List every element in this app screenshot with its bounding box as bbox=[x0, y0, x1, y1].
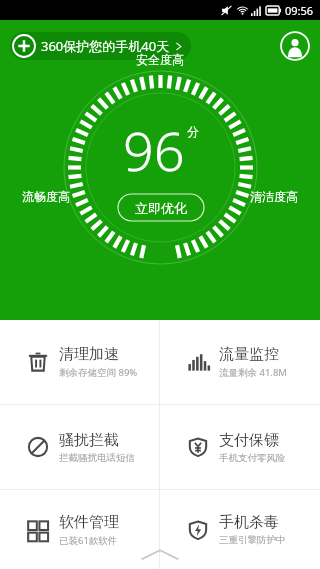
staticText: 骚扰拦截 bbox=[59, 431, 119, 450]
staticText: 已装61款软件 bbox=[59, 534, 118, 547]
staticText: 安全度高 bbox=[136, 52, 184, 67]
staticText: 拦截骚扰电话短信 bbox=[59, 452, 135, 464]
staticText: 清理加速 bbox=[59, 345, 119, 364]
staticText: 360保护您的手机40天 bbox=[41, 37, 170, 55]
staticText: 流量剩余 41.8M bbox=[219, 366, 287, 379]
staticText: 清洁度高 bbox=[250, 189, 298, 204]
staticText: 剩余存储空间 89% bbox=[59, 366, 138, 379]
staticText: 手机杀毒 bbox=[219, 513, 279, 532]
button[interactable]: 软件管理 bbox=[0, 490, 159, 569]
staticText: 手机支付零风险 bbox=[219, 452, 286, 464]
button[interactable]: 骚扰拦截 bbox=[0, 405, 159, 489]
button[interactable]: 支付保镖 bbox=[160, 405, 320, 489]
staticText: 软件管理 bbox=[59, 513, 119, 532]
staticText: 立即优化 bbox=[135, 200, 187, 216]
button[interactable]: 立即优化 bbox=[117, 193, 205, 222]
button[interactable]: 流量监控 bbox=[160, 320, 320, 404]
staticText: 三重引擎防护中 bbox=[219, 534, 286, 546]
button[interactable]: 手机杀毒 bbox=[160, 490, 320, 569]
staticText: 支付保镖 bbox=[219, 431, 279, 450]
staticText: 09:56 bbox=[285, 3, 314, 18]
button[interactable]: 360保护您的手机40天 bbox=[10, 32, 191, 60]
staticText: 96 bbox=[123, 113, 185, 187]
staticText: 分 bbox=[187, 124, 199, 139]
button[interactable]: 清理加速 bbox=[0, 320, 159, 404]
button[interactable]: Account bbox=[280, 31, 310, 61]
staticText: 流畅度高 bbox=[22, 189, 70, 204]
button[interactable]: Expand bbox=[137, 545, 183, 565]
staticText: 流量监控 bbox=[219, 345, 279, 364]
